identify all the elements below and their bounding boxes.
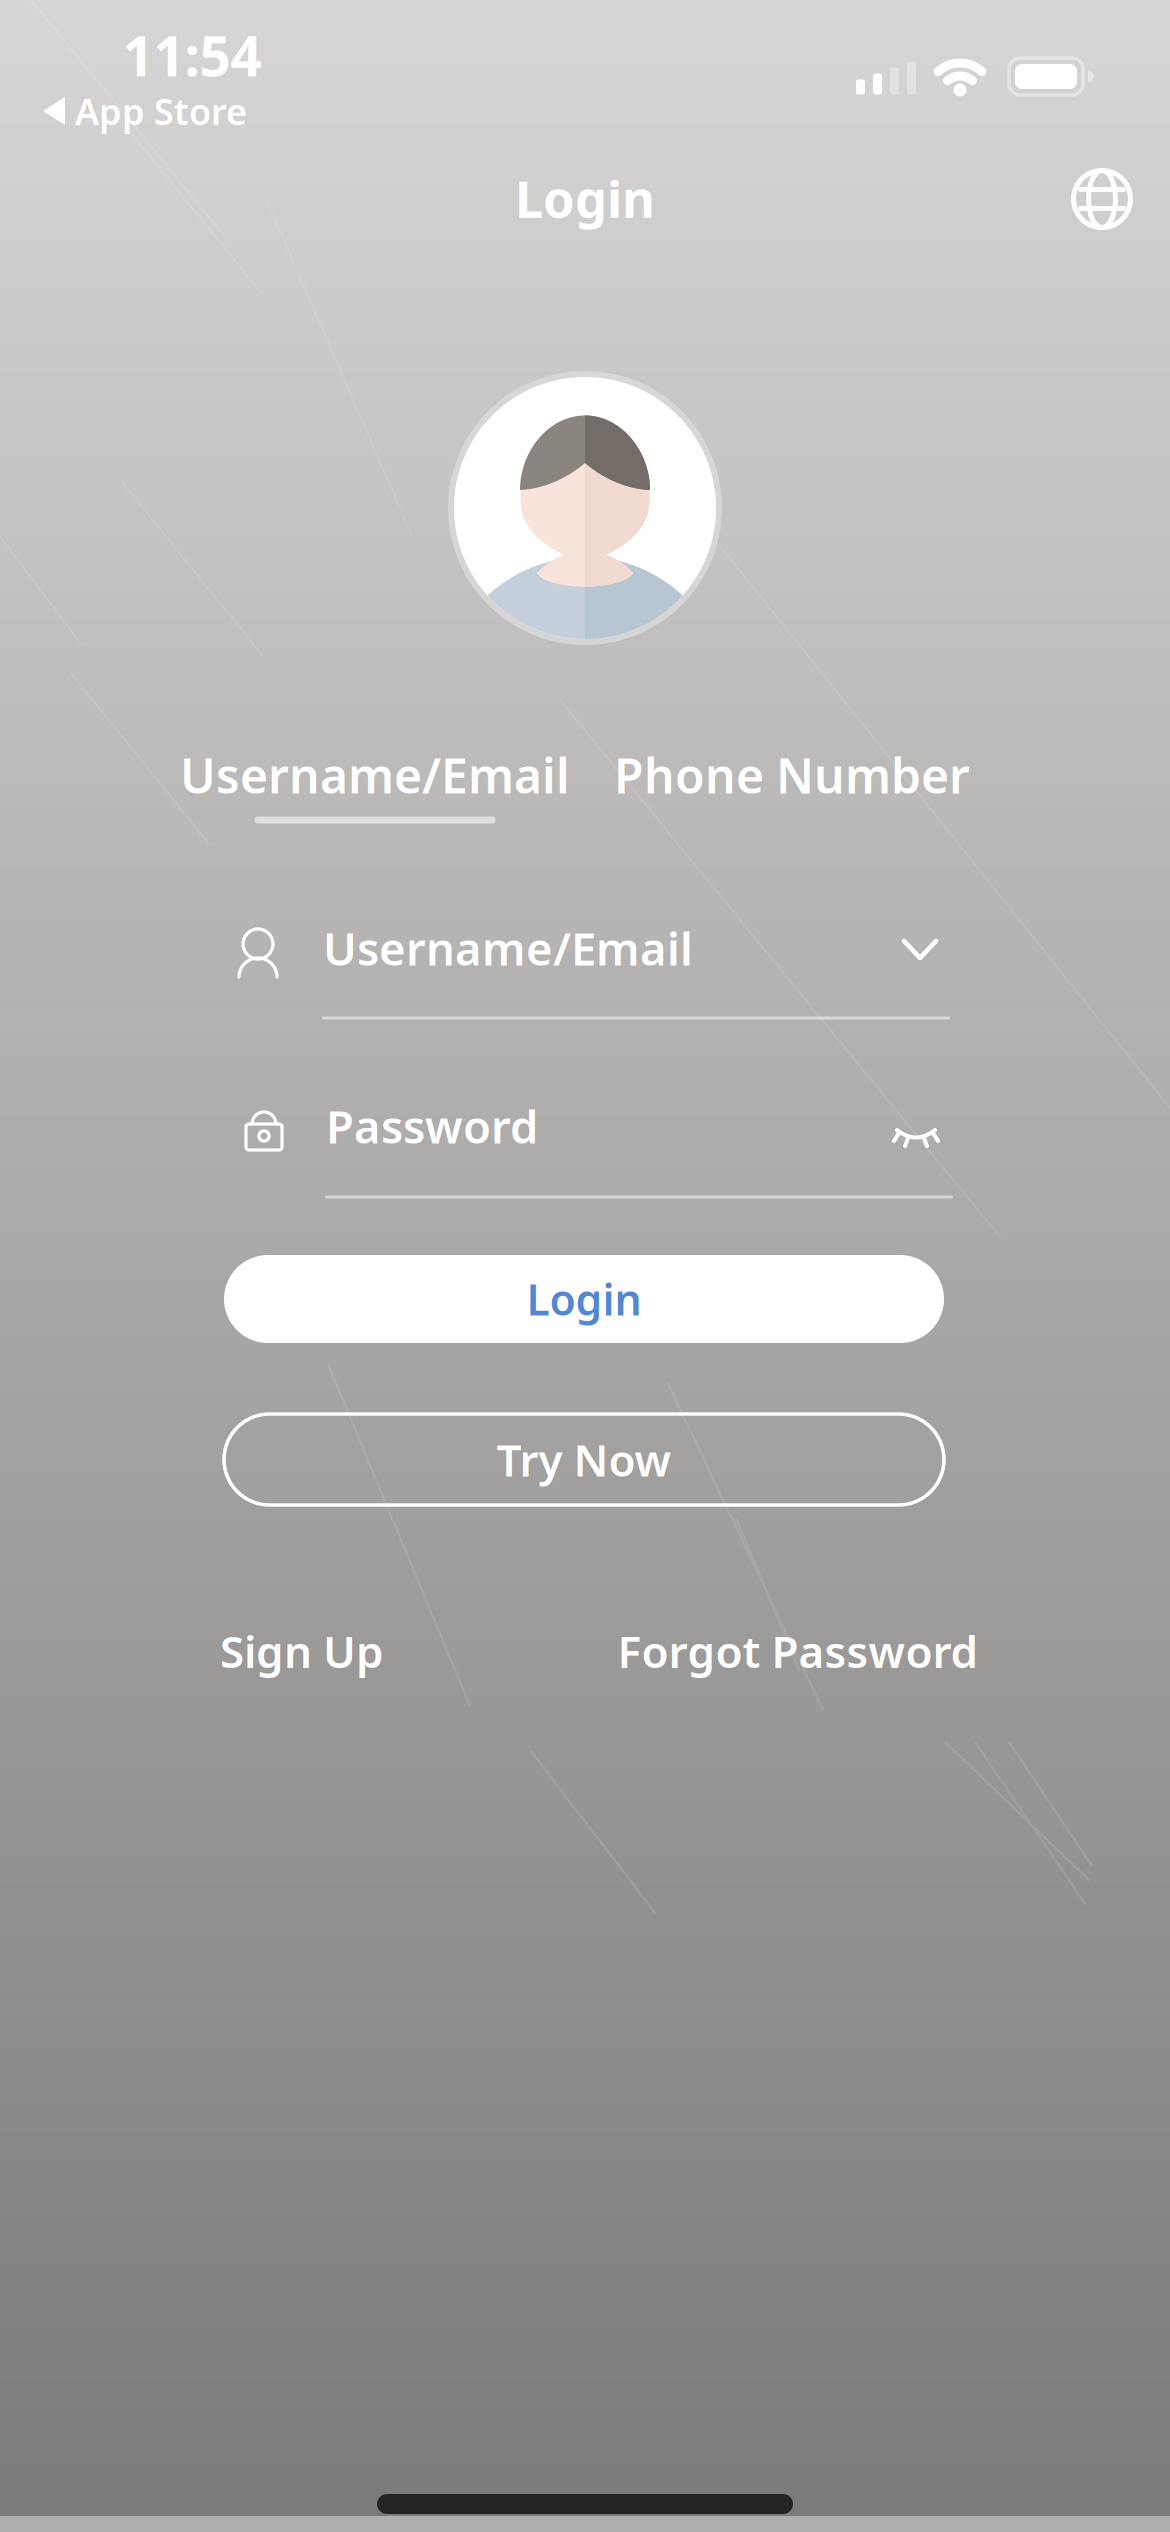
button[interactable]: Sign Up xyxy=(220,1622,384,1680)
button[interactable]: Choose saved account xyxy=(888,918,952,982)
button[interactable]: Forgot Password xyxy=(617,1622,978,1680)
staticText: Username/Email xyxy=(180,743,570,807)
staticText: Password xyxy=(326,1096,538,1156)
staticText: Username/Email xyxy=(323,918,693,978)
button[interactable]: Password xyxy=(220,1071,956,1181)
button[interactable]: Username or Email xyxy=(220,895,956,1005)
staticText: Login xyxy=(515,164,655,232)
staticText: Forgot Password xyxy=(617,1622,978,1680)
button[interactable]: Language xyxy=(1064,161,1140,237)
button[interactable]: Login xyxy=(224,1255,944,1343)
button[interactable]: Show password xyxy=(884,1105,948,1169)
staticText: Phone Number xyxy=(614,743,970,807)
staticText: Try Now xyxy=(496,1430,671,1489)
staticText: Login xyxy=(526,1271,641,1327)
staticText: 11:54 xyxy=(122,19,261,91)
button[interactable]: Phone Number xyxy=(614,743,970,807)
button[interactable]: Username/Email xyxy=(180,743,570,807)
button[interactable]: Back to App Store xyxy=(43,87,247,135)
staticText: Sign Up xyxy=(220,1622,384,1680)
button[interactable]: Try Now xyxy=(224,1414,944,1505)
staticText: App Store xyxy=(75,87,247,135)
